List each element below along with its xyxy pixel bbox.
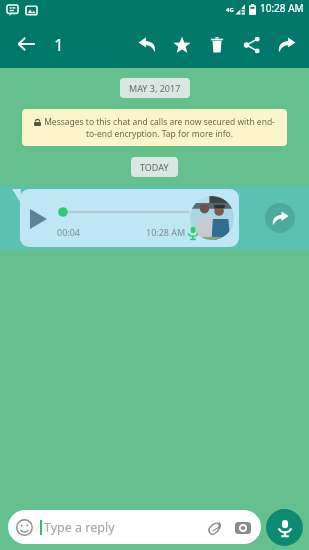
button[interactable]: Camera <box>232 517 253 538</box>
button[interactable]: Messages to this chat and calls are now … <box>22 109 287 146</box>
button[interactable]: Attach <box>204 517 225 538</box>
button[interactable]: Play <box>27 207 50 230</box>
button[interactable]: Star <box>166 29 197 60</box>
button[interactable]: Reply <box>131 29 162 60</box>
button[interactable]: Forward <box>271 29 302 60</box>
staticText: MAY 3, 2017 <box>129 82 181 94</box>
staticText: Messages to this chat and calls are now … <box>44 116 275 139</box>
button[interactable]: Back <box>9 27 43 61</box>
staticText: 4G <box>226 6 234 14</box>
button[interactable]: Share <box>236 29 267 60</box>
staticText: TODAY <box>140 161 169 173</box>
staticText: 10:28 AM <box>146 226 186 238</box>
staticText: Type a reply <box>44 519 115 536</box>
button[interactable]: Type a reply <box>8 510 261 544</box>
button[interactable]: TODAY <box>131 157 178 177</box>
button[interactable]: Play <box>0 186 309 250</box>
button[interactable]: Delete <box>201 29 232 60</box>
button[interactable]: MAY 3, 2017 <box>120 78 190 98</box>
staticText: 1 <box>54 33 64 56</box>
staticText: 10:28 AM <box>260 1 304 15</box>
button[interactable]: Forward <box>265 203 295 233</box>
staticText: 00:04 <box>57 226 81 238</box>
button[interactable]: Record voice message <box>266 509 303 546</box>
